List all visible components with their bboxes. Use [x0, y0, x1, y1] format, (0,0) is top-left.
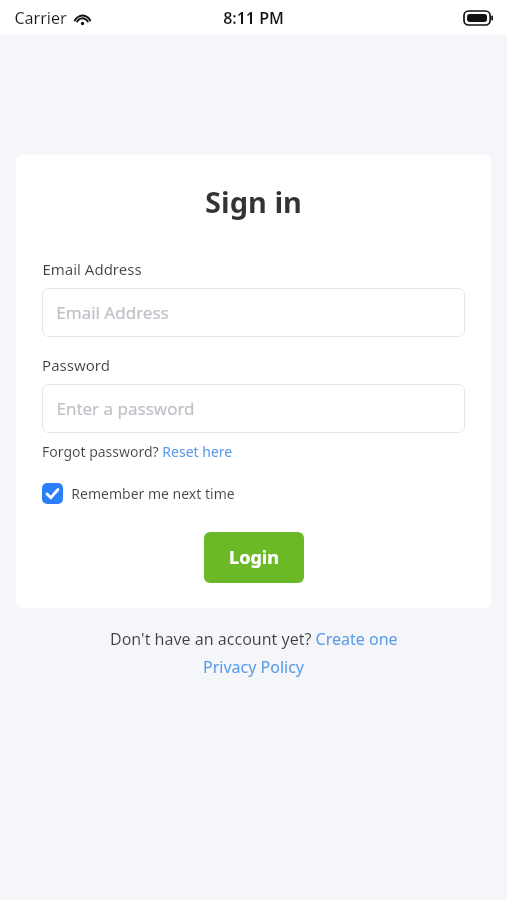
- button[interactable]: Login: [204, 532, 304, 583]
- button[interactable]: Don't have an account yet? Create one: [110, 628, 398, 650]
- staticText: Forgot password? Reset here: [42, 442, 233, 461]
- staticText: Remember me next time: [71, 484, 235, 503]
- button[interactable]: Forgot password? Reset here: [42, 442, 233, 461]
- staticText: Privacy Policy: [203, 656, 304, 678]
- button[interactable]: Remember me checkbox: [42, 483, 235, 504]
- button[interactable]: Privacy Policy: [203, 656, 304, 678]
- staticText: Sign in: [205, 182, 302, 221]
- button[interactable]: Email Address: [42, 288, 465, 337]
- staticText: Email Address: [42, 259, 142, 279]
- staticText: Email Address: [56, 301, 169, 324]
- staticText: Login: [229, 545, 279, 570]
- other: Remember me checkbox: [42, 483, 63, 504]
- staticText: Don't have an account yet? Create one: [110, 628, 398, 650]
- staticText: Enter a password: [56, 397, 195, 420]
- staticText: Password: [42, 355, 110, 375]
- staticText: 8:11 PM: [223, 7, 284, 29]
- button[interactable]: Enter a password: [42, 384, 465, 433]
- staticText: Carrier: [14, 7, 67, 29]
